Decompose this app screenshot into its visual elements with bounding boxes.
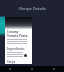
staticText: Creamy Tomato Pasta — [7, 30, 30, 38]
button[interactable]: Favorite — [24, 54, 27, 57]
staticText: Recipe Details — [19, 6, 46, 11]
button[interactable]: Creamy Tomato Pasta — [5, 17, 32, 64]
staticText: Steps — [7, 60, 16, 64]
staticText: Ingredients — [7, 47, 25, 51]
